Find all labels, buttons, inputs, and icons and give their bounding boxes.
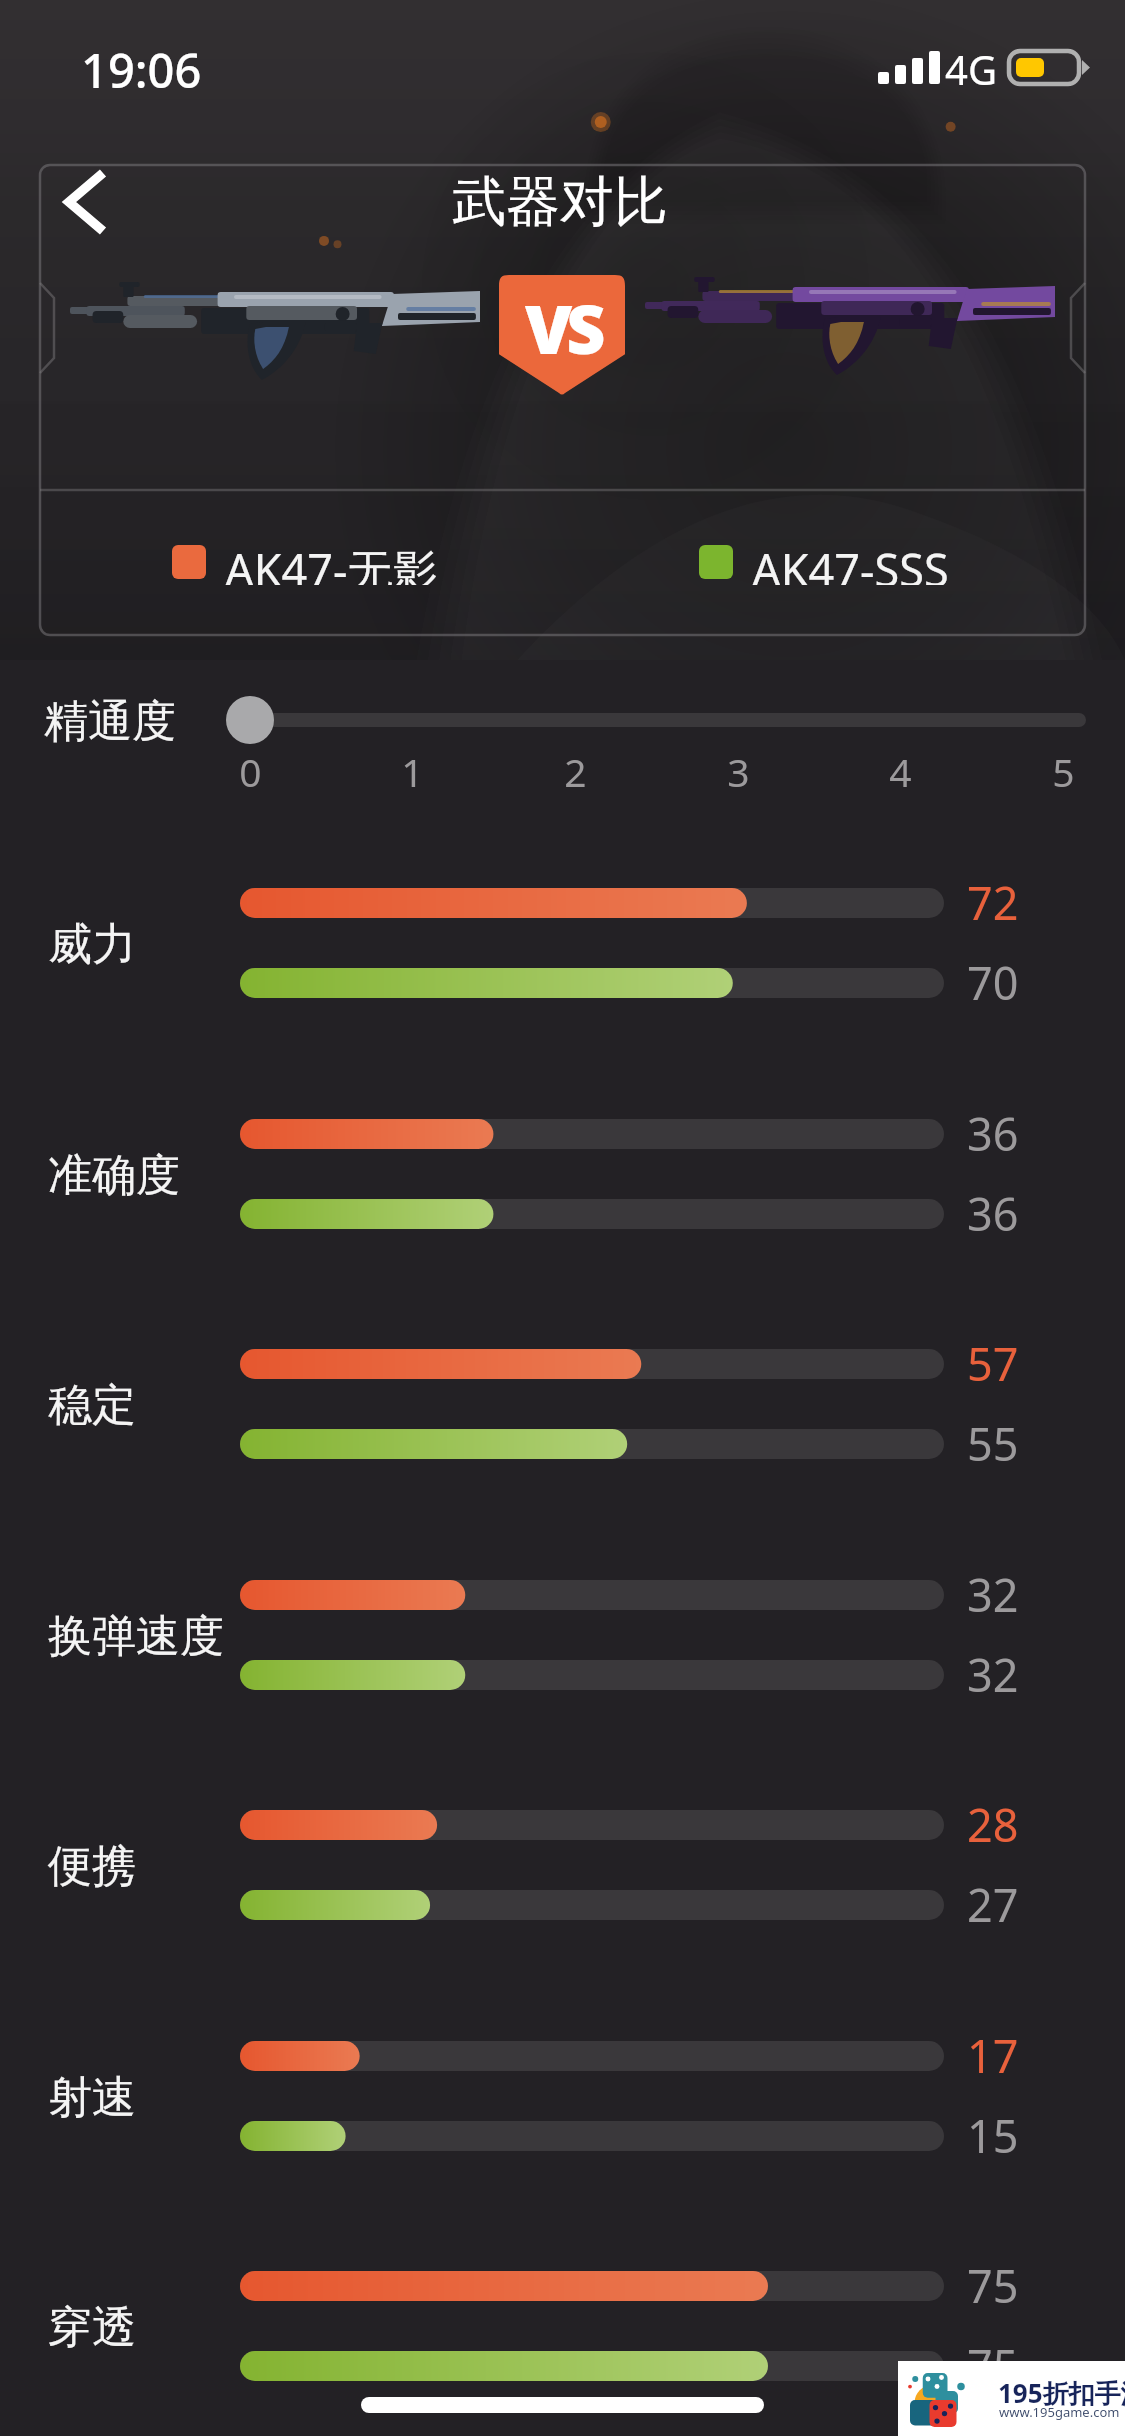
staticText: 70 xyxy=(967,952,1019,1013)
staticText: 4G xyxy=(945,42,997,96)
button[interactable] xyxy=(0,1074,1125,1274)
button[interactable]: AK47-SSS xyxy=(699,539,949,585)
staticText: 195折扣手游 xyxy=(998,2375,1125,2411)
staticText: 精通度 xyxy=(44,694,176,749)
staticText: 72 xyxy=(967,872,1019,933)
staticText: 75 xyxy=(967,2335,1019,2396)
staticText: 1 xyxy=(401,745,424,793)
staticText: AK47-无影 xyxy=(225,539,438,585)
staticText: VS xyxy=(525,281,600,374)
staticText: 3 xyxy=(727,745,750,793)
staticText: 15 xyxy=(967,2105,1019,2166)
staticText: 4 xyxy=(889,745,912,793)
staticText: 换弹速度 xyxy=(48,1609,224,1664)
button[interactable]: AK47-无影 xyxy=(172,539,438,585)
staticText: 射速 xyxy=(48,2070,136,2125)
staticText: 5 xyxy=(1052,745,1075,793)
staticText: 0 xyxy=(239,745,262,793)
staticText: 穿透 xyxy=(48,2300,136,2355)
button[interactable] xyxy=(0,1304,1125,1504)
staticText: 36 xyxy=(967,1103,1019,1164)
staticText: 便携 xyxy=(48,1839,136,1894)
staticText: www.195game.com xyxy=(999,2403,1120,2421)
staticText: 27 xyxy=(967,1874,1019,1935)
button[interactable]: Mastery level slider xyxy=(226,696,1110,744)
staticText: 32 xyxy=(967,1644,1019,1705)
staticText: 75 xyxy=(967,2255,1019,2316)
button[interactable] xyxy=(0,1765,1125,1965)
staticText: 57 xyxy=(967,1333,1019,1394)
staticText: 19:06 xyxy=(81,38,202,102)
staticText: 36 xyxy=(967,1183,1019,1244)
button[interactable] xyxy=(0,1996,1125,2196)
staticText: 威力 xyxy=(48,917,136,972)
button[interactable] xyxy=(0,843,1125,1043)
staticText: 17 xyxy=(967,2025,1019,2086)
staticText: 2 xyxy=(564,745,587,793)
staticText: 准确度 xyxy=(48,1148,180,1203)
staticText: 稳定 xyxy=(48,1378,136,1433)
staticText: AK47-SSS xyxy=(752,539,949,585)
staticText: 55 xyxy=(967,1413,1019,1474)
staticText: 武器对比 xyxy=(452,168,668,236)
button[interactable] xyxy=(0,2226,1125,2426)
staticText: 32 xyxy=(967,1564,1019,1625)
button[interactable]: Back xyxy=(30,153,140,251)
staticText: 28 xyxy=(967,1794,1019,1855)
button[interactable] xyxy=(0,1535,1125,1735)
